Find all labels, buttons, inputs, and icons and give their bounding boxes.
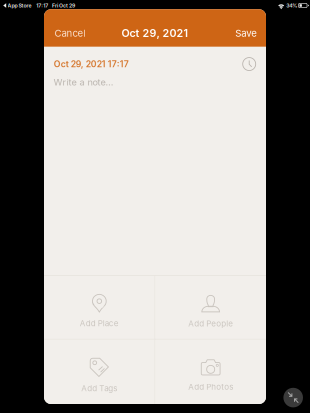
button[interactable]: Save (232, 20, 260, 46)
staticText: Add Place (80, 318, 119, 328)
staticText: Write a note… (53, 77, 113, 88)
staticText: Cancel (54, 27, 85, 39)
staticText: Add Tags (81, 384, 117, 393)
staticText: Add Photos (188, 382, 233, 392)
button[interactable]: Add Place (44, 276, 155, 339)
staticText: App Store (8, 2, 32, 9)
button[interactable]: Add Tags (44, 340, 155, 404)
button[interactable]: Add People (155, 276, 266, 339)
staticText: Oct 29, 2021 17:17 (54, 59, 129, 69)
button[interactable]: Exit full screen (283, 388, 303, 407)
staticText: Add People (188, 319, 233, 328)
staticText: Fri Oct 29 (52, 2, 75, 9)
staticText: 17:17 (36, 2, 48, 9)
button[interactable]: Change time (240, 55, 259, 74)
button[interactable]: Add Photos (155, 340, 266, 404)
staticText: Oct 29, 2021 (121, 27, 188, 40)
staticText: Save (235, 27, 257, 39)
staticText: 34% (286, 2, 297, 9)
button[interactable]: Cancel (51, 20, 88, 46)
